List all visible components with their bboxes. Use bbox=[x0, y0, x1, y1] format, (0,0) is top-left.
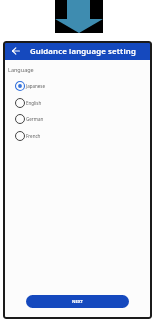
button[interactable]: English bbox=[13, 95, 83, 111]
staticText: Japanese bbox=[26, 83, 46, 89]
button[interactable]: Japanese bbox=[13, 78, 83, 94]
staticText: German bbox=[26, 116, 44, 122]
button[interactable]: Guidance language setting bbox=[4, 42, 151, 60]
button[interactable]: NEXT bbox=[26, 295, 129, 308]
staticText: English bbox=[26, 100, 42, 106]
staticText: NEXT bbox=[72, 299, 83, 305]
button[interactable]: French bbox=[13, 128, 83, 144]
button[interactable]: German bbox=[13, 111, 83, 127]
staticText: Guidance language setting bbox=[30, 46, 136, 57]
button[interactable] bbox=[12, 47, 20, 55]
staticText: French bbox=[26, 133, 41, 139]
staticText: Language bbox=[8, 66, 34, 73]
